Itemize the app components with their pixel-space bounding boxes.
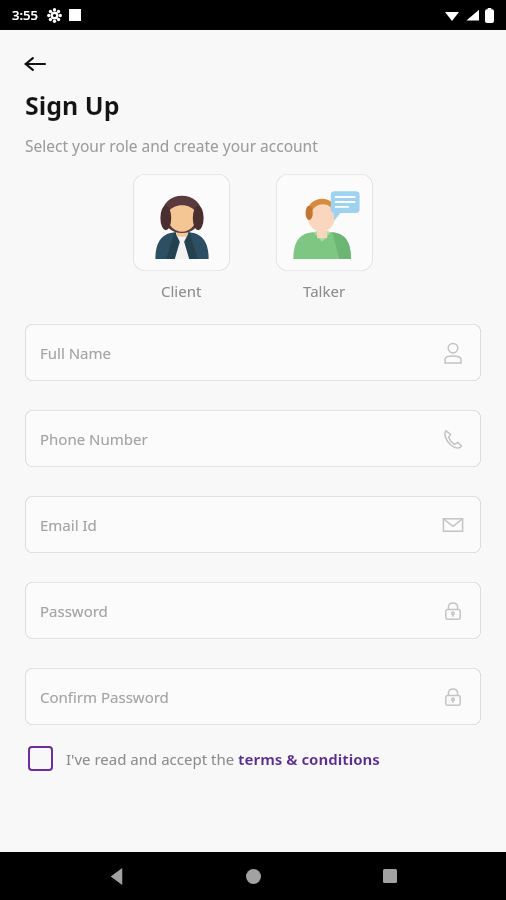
staticText: Email Id xyxy=(40,515,97,535)
staticText: Client xyxy=(161,281,202,301)
button[interactable]: Phone Number xyxy=(25,410,481,467)
button[interactable]: Full Name xyxy=(25,324,481,381)
staticText: I've read and accept the terms & conditi… xyxy=(66,749,380,769)
staticText: Confirm Password xyxy=(40,687,169,707)
staticText: Full Name xyxy=(40,343,111,363)
staticText: Password xyxy=(40,601,108,621)
staticText: Select your role and create your account xyxy=(25,135,318,156)
button[interactable]: Back xyxy=(17,46,53,82)
button[interactable]: Talker xyxy=(276,174,373,301)
button[interactable]: Home xyxy=(233,856,273,896)
button[interactable]: Recents xyxy=(370,856,410,896)
staticText: Talker xyxy=(303,281,346,301)
button[interactable]: Confirm Password xyxy=(25,668,481,725)
staticText: Phone Number xyxy=(40,429,148,449)
button[interactable]: I've read and accept the terms & conditi… xyxy=(29,747,477,770)
staticText: Sign Up xyxy=(25,88,120,122)
button[interactable]: Back xyxy=(97,856,137,896)
button[interactable]: Password xyxy=(25,582,481,639)
button[interactable]: Client xyxy=(133,174,230,301)
button[interactable]: Email Id xyxy=(25,496,481,553)
staticText: 3:55 xyxy=(12,6,38,24)
